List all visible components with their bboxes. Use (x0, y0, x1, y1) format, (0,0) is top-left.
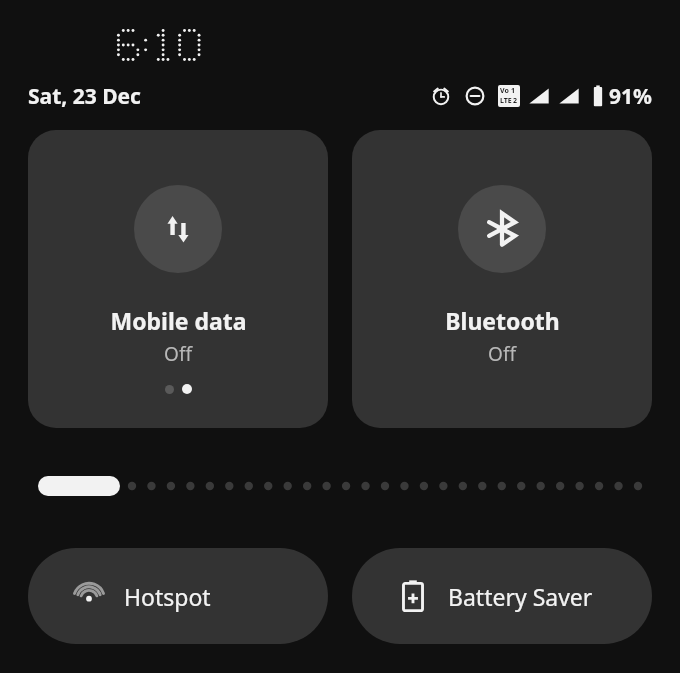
staticText: Off (164, 341, 192, 367)
other: Battery (590, 84, 606, 108)
staticText: Off (488, 341, 516, 367)
other: Alarm set (430, 85, 452, 107)
button[interactable]: Mobile data (28, 130, 328, 428)
other: Signal SIM 2 (558, 86, 580, 106)
staticText: 1 (511, 86, 516, 96)
other: Signal SIM 1 (528, 86, 550, 106)
staticText: 91% (609, 82, 652, 111)
button[interactable]: Battery Saver (352, 548, 652, 644)
button[interactable]: Hotspot (28, 548, 328, 644)
other: Do not disturb (464, 85, 486, 107)
staticText: Battery Saver (448, 581, 593, 612)
button[interactable]: Bluetooth (352, 130, 652, 428)
staticText: Sat, 23 Dec (28, 82, 141, 111)
staticText: Hotspot (124, 581, 211, 612)
staticText: Vo (500, 86, 509, 96)
staticText: LTE (500, 96, 512, 106)
button[interactable] (38, 476, 120, 496)
staticText: Bluetooth (445, 305, 560, 336)
staticText: 2 (513, 96, 518, 106)
staticText: Mobile data (110, 305, 247, 336)
